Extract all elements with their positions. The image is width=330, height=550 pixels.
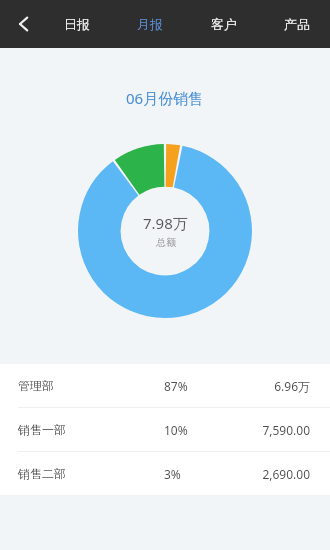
staticText: 销售二部 — [18, 466, 66, 481]
staticText: 2,690.00 — [262, 466, 310, 482]
button[interactable]: 管理部 — [0, 364, 330, 407]
staticText: 10% — [164, 422, 188, 438]
button[interactable]: Back — [0, 0, 48, 48]
staticText: 06月份销售 — [126, 88, 204, 108]
staticText: 3% — [164, 466, 181, 482]
staticText: 87% — [164, 378, 188, 394]
staticText: 月报 — [137, 16, 163, 32]
staticText: 6.96万 — [274, 378, 310, 394]
staticText: 管理部 — [18, 378, 54, 393]
staticText: 7,590.00 — [262, 422, 310, 438]
button[interactable]: 销售二部 — [0, 452, 330, 495]
staticText: 7.98万 — [143, 213, 188, 233]
button[interactable]: 产品 — [274, 4, 320, 44]
staticText: 客户 — [211, 16, 237, 32]
button[interactable]: 销售一部 — [0, 408, 330, 451]
button[interactable]: 日报 — [54, 4, 100, 44]
staticText: 日报 — [64, 16, 90, 32]
button[interactable]: 客户 — [201, 4, 247, 44]
staticText: 销售一部 — [18, 422, 66, 437]
staticText: 总额 — [156, 236, 176, 249]
staticText: 产品 — [284, 16, 310, 32]
button[interactable]: 月报 — [127, 4, 173, 44]
